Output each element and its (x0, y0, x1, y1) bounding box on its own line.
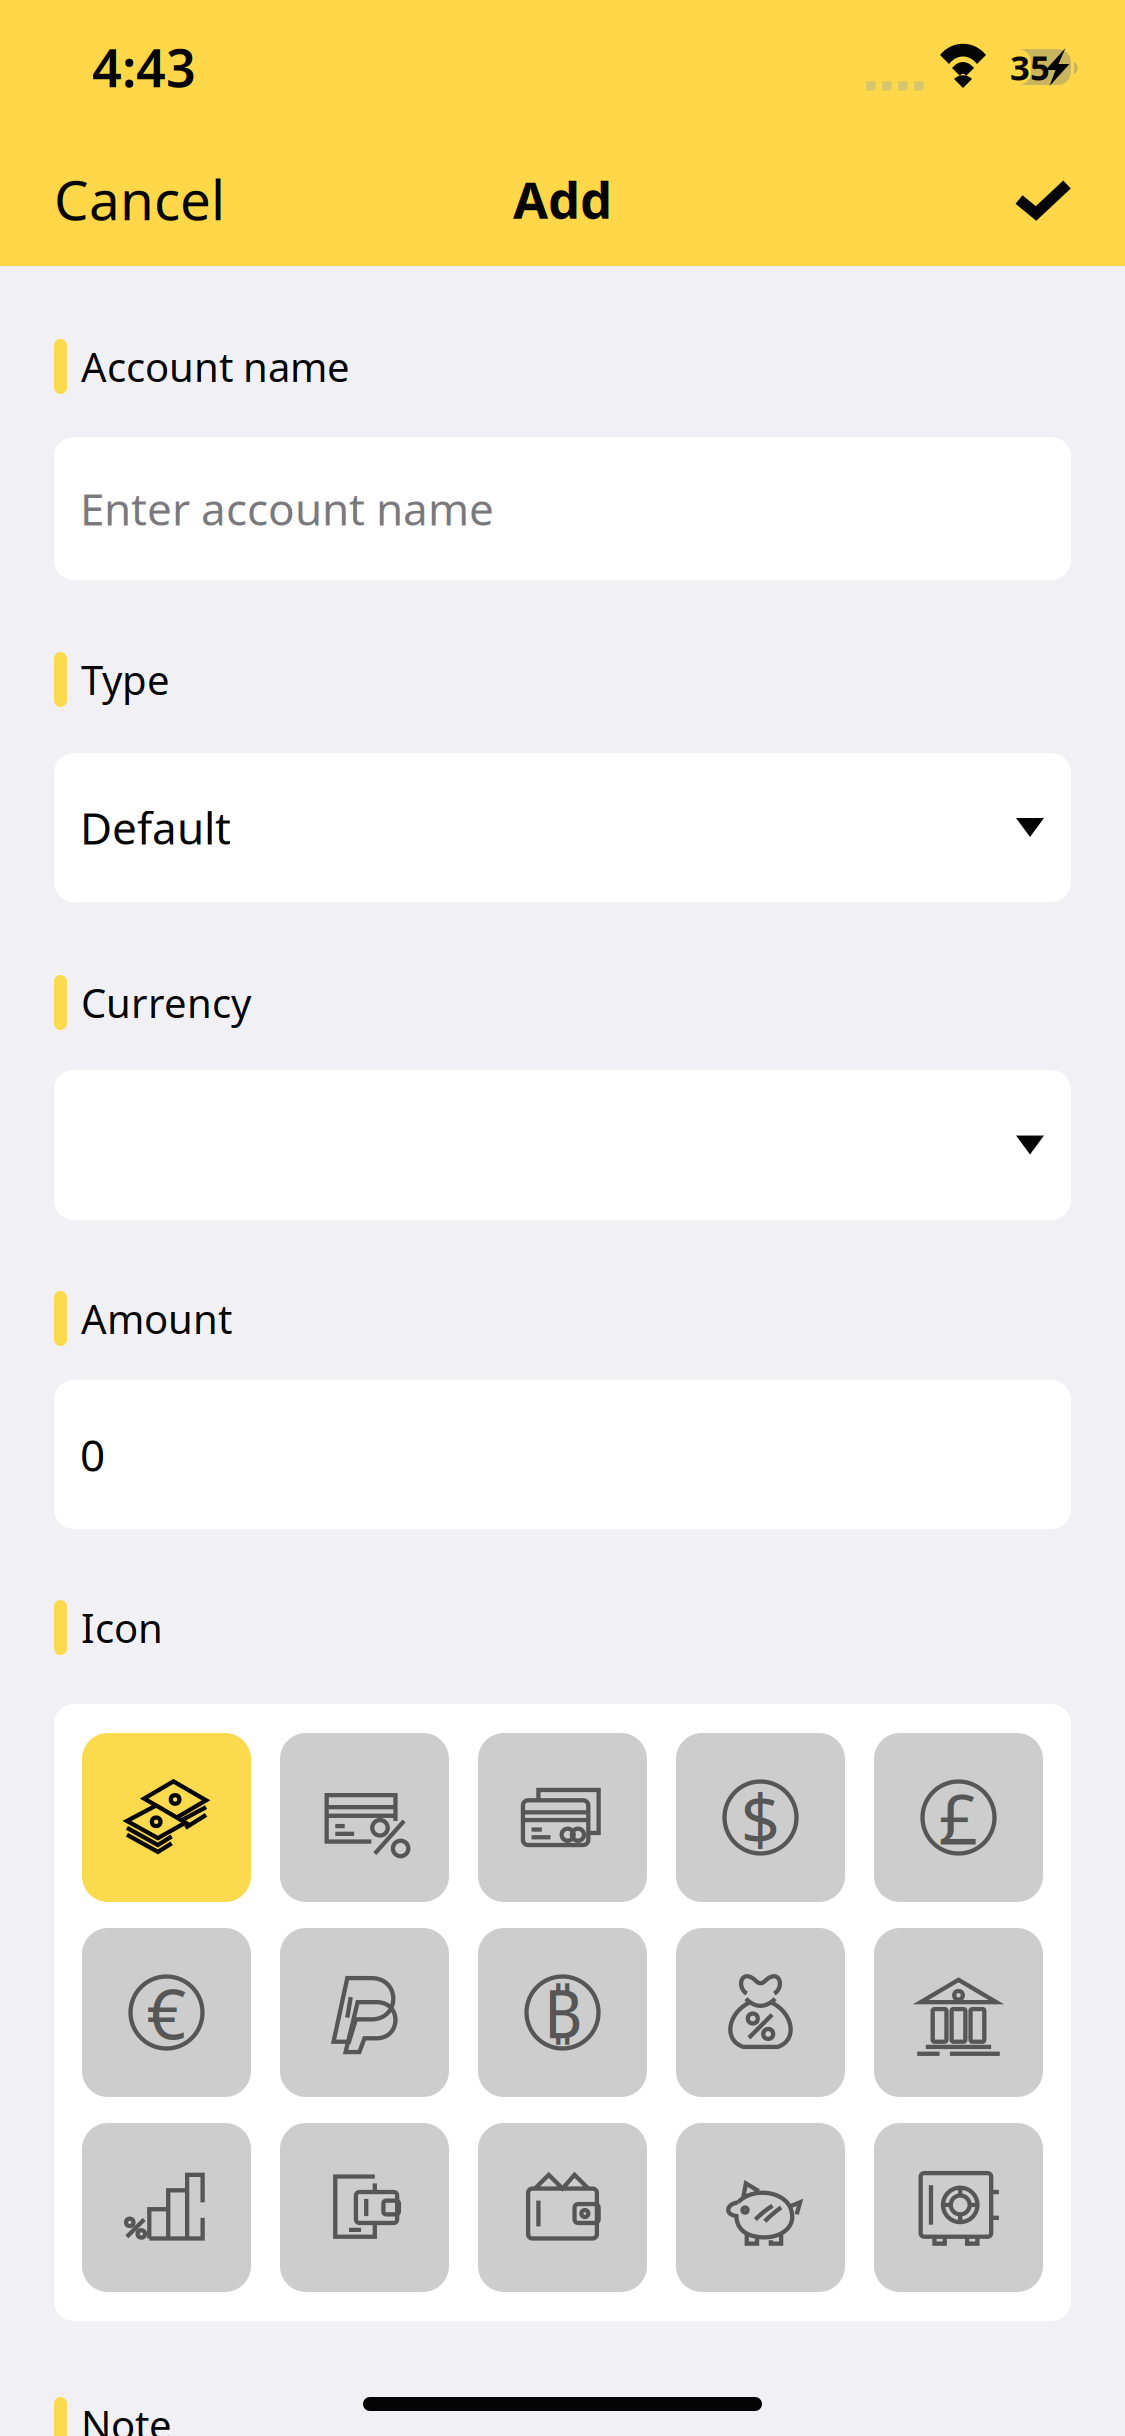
staticText: 4:43 (92, 32, 196, 102)
staticText: ₿ (543, 1968, 581, 2057)
button[interactable]: Growth chart (82, 2123, 251, 2292)
button[interactable]: Dollar (676, 1733, 845, 1902)
staticText: Account name (81, 340, 350, 393)
staticText: 35 (1010, 44, 1050, 90)
staticText: Cancel (54, 163, 225, 235)
button[interactable]: Money bag (676, 1928, 845, 2097)
staticText: $ (740, 1771, 780, 1864)
button[interactable]: Cash (82, 1733, 251, 1902)
button[interactable]: Default (0, 753, 1125, 902)
staticText: Icon (81, 1601, 163, 1654)
button[interactable]: Enter account name (0, 437, 1125, 580)
staticText: £ (938, 1771, 978, 1864)
button[interactable]: Credit card discount (280, 1733, 449, 1902)
staticText: 0 (80, 1425, 105, 1484)
button[interactable]: 0 (0, 1380, 1125, 1529)
button[interactable]: Safe (874, 2123, 1043, 2292)
button[interactable]: Bank (874, 1928, 1043, 2097)
button[interactable]: PayPal (280, 1928, 449, 2097)
staticText: Enter account name (80, 479, 494, 538)
button[interactable] (0, 1070, 1125, 1220)
staticText: Currency (81, 976, 251, 1029)
button[interactable]: Piggy bank (676, 2123, 845, 2292)
button[interactable]: Save (961, 133, 1125, 265)
button[interactable]: Bitcoin (478, 1928, 647, 2097)
button[interactable]: Mobile wallet (280, 2123, 449, 2292)
staticText: Default (80, 798, 231, 857)
button[interactable]: Credit cards (478, 1733, 647, 1902)
button[interactable]: Wallet (478, 2123, 647, 2292)
staticText: Type (81, 653, 170, 706)
staticText: Note (81, 2398, 172, 2436)
staticText: Add (513, 165, 612, 233)
staticText: Amount (81, 1292, 232, 1345)
staticText: € (146, 1966, 186, 2059)
button[interactable]: Euro (82, 1928, 251, 2097)
button[interactable]: Cancel (0, 133, 279, 265)
button[interactable]: Pound (874, 1733, 1043, 1902)
